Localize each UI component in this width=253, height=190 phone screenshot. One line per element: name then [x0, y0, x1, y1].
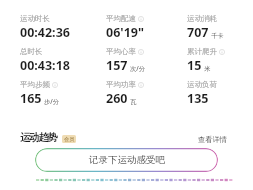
staticText: 15	[187, 57, 202, 74]
staticText: 平均步频	[20, 80, 50, 89]
staticText: 06'19"	[106, 24, 144, 41]
button[interactable]: 查看详情	[198, 135, 227, 144]
staticText: 运动趋势	[20, 131, 57, 144]
staticText: 运动消耗	[187, 14, 217, 23]
staticText: 累计爬升	[187, 47, 217, 56]
staticText: 平均配速	[106, 14, 136, 23]
staticText: 707	[187, 24, 209, 41]
staticText: 运动负荷	[187, 80, 217, 89]
staticText: 260	[106, 90, 128, 107]
staticText: 00:42:36	[20, 24, 70, 41]
staticText: 米	[204, 65, 211, 73]
staticText: 记录下运动感受吧	[89, 154, 165, 166]
staticText: 次/分	[130, 64, 146, 73]
staticText: 135	[187, 90, 209, 107]
button[interactable]: 记录下运动感受吧	[35, 148, 218, 172]
staticText: 千卡	[211, 32, 224, 40]
staticText: 00:43:18	[20, 57, 70, 74]
staticText: 165	[20, 90, 42, 107]
staticText: 平均心率	[106, 47, 136, 56]
staticText: 157	[106, 57, 128, 74]
staticText: 查看详情	[198, 135, 227, 144]
staticText: 运动时长	[20, 14, 50, 23]
staticText: 瓦	[130, 98, 137, 106]
staticText: 会员	[64, 136, 75, 143]
staticText: 平均功率	[106, 80, 136, 89]
staticText: 总时长	[20, 47, 43, 56]
staticText: 步/分	[44, 97, 60, 106]
